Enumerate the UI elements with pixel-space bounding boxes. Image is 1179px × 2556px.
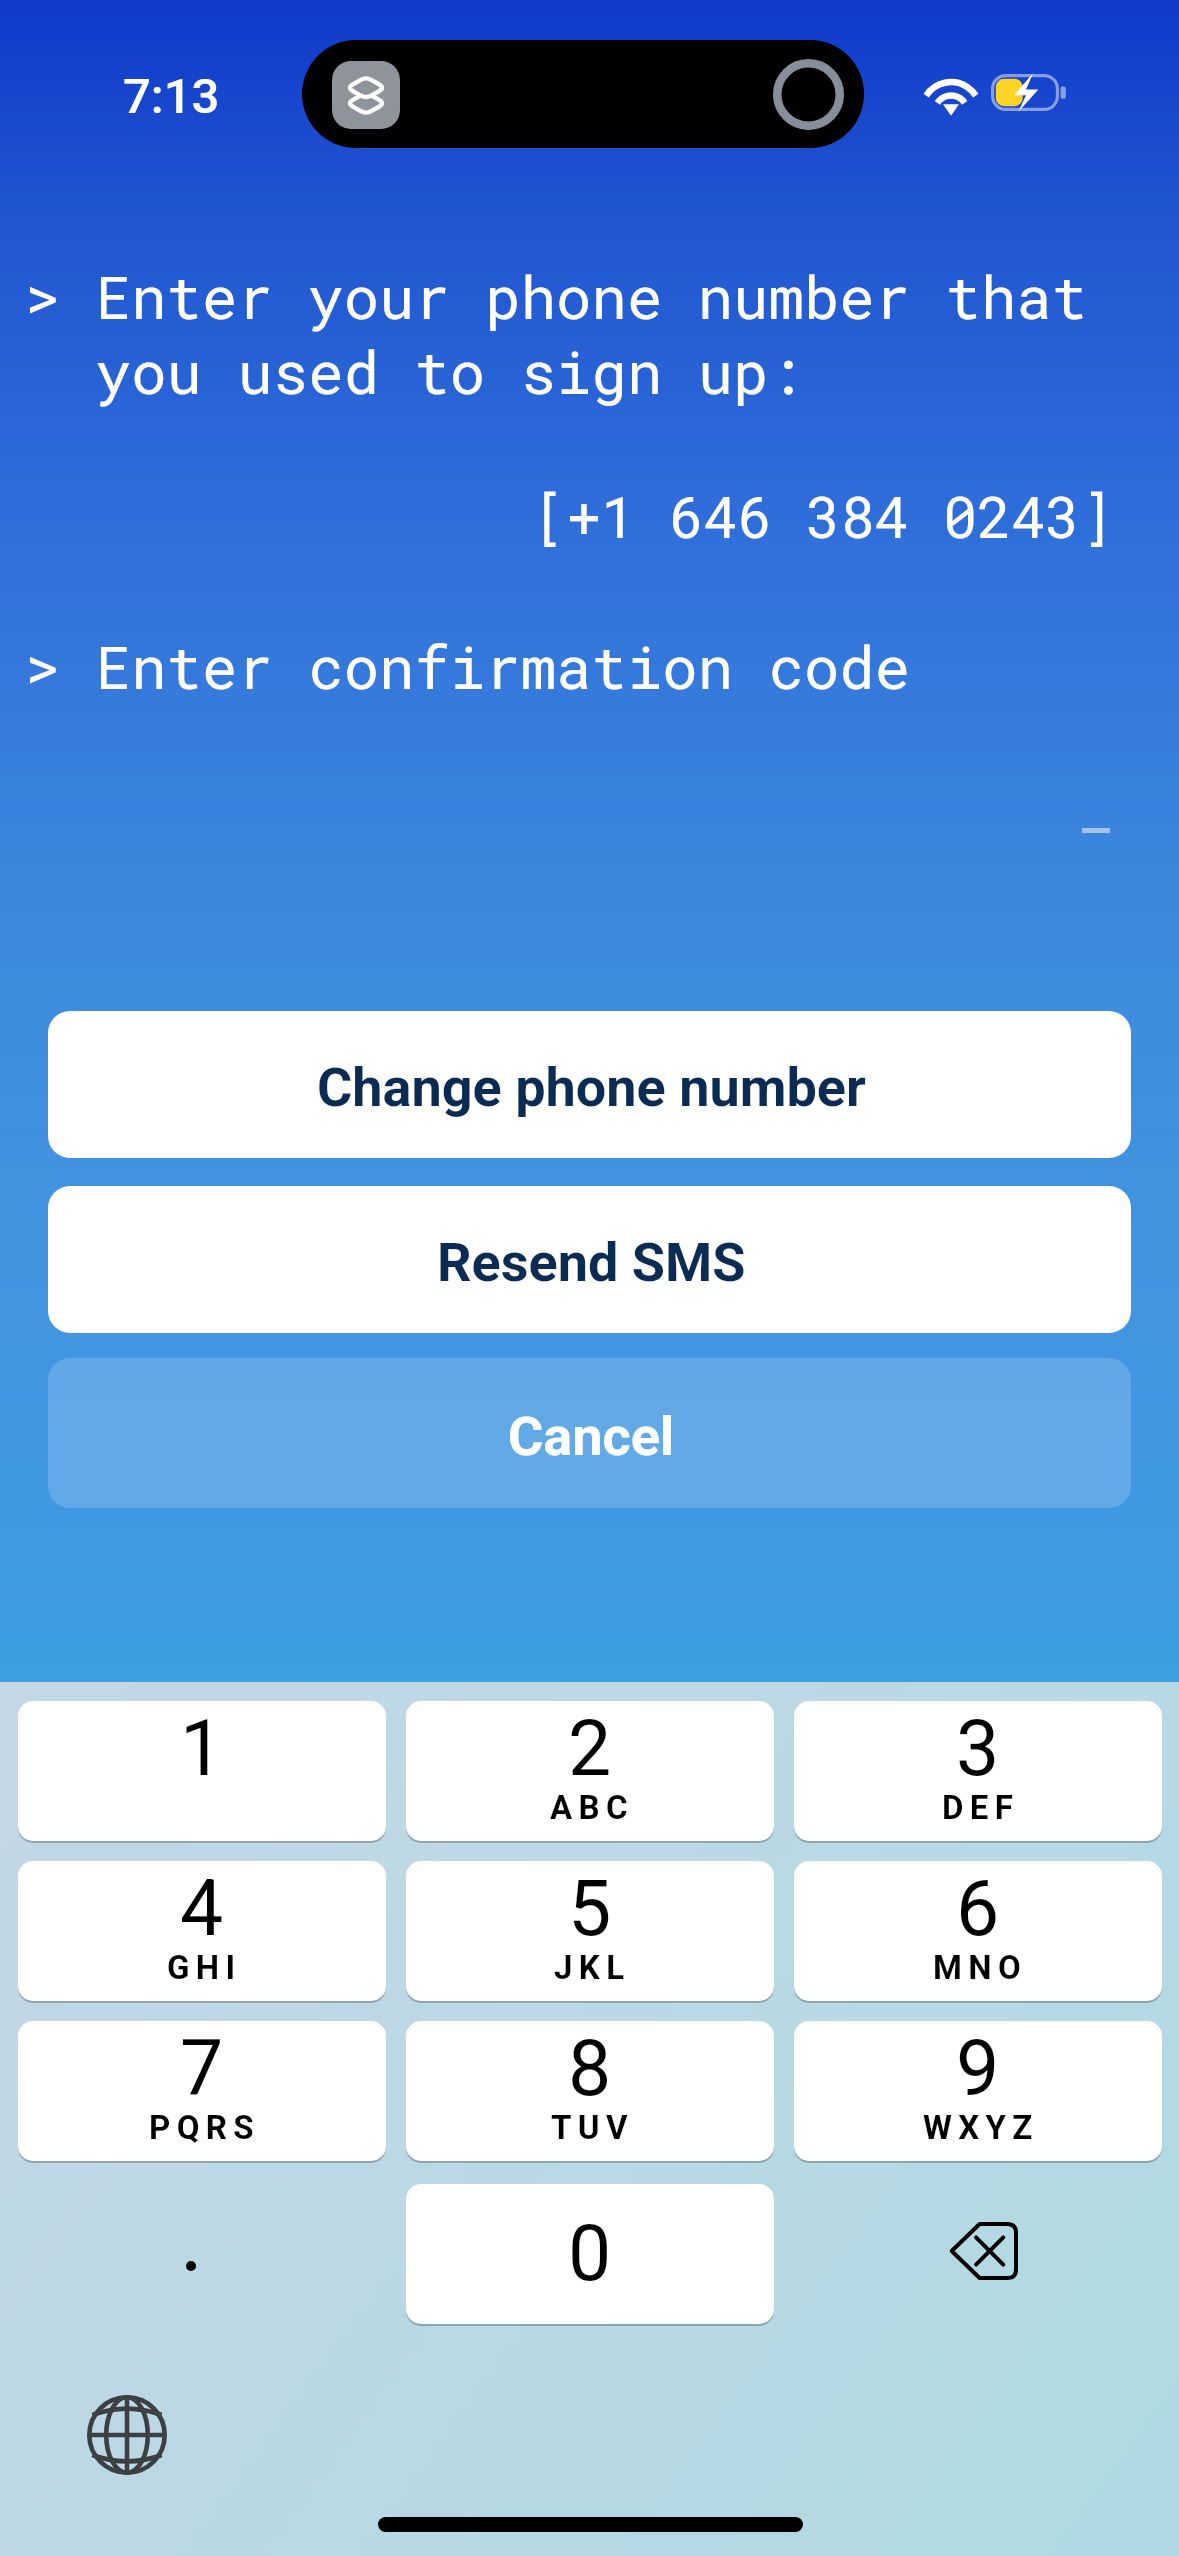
staticText: Cancel [508,1405,675,1468]
staticText: 3 [956,1704,1000,1794]
button[interactable]: Backspace [794,2184,1162,2324]
staticText: M N O [933,1948,1023,1987]
button[interactable]: 3 [794,1701,1162,1841]
staticText: > Enter confirmation code [25,627,911,705]
staticText: 7 [180,2024,224,2114]
staticText: G H I [167,1948,237,1987]
button[interactable]: Cancel [48,1358,1131,1508]
staticText: 9 [956,2024,1000,2114]
button[interactable]: 2 [406,1701,774,1841]
staticText: 4 [180,1864,224,1954]
button[interactable]: 4 [18,1861,386,2001]
staticText: 1 [180,1704,224,1794]
button[interactable]: 5 [406,1861,774,2001]
button[interactable]: Period [18,2184,386,2324]
staticText: Change phone number [317,1056,866,1119]
staticText: 5 [568,1864,612,1954]
button[interactable]: Change phone number [48,1011,1131,1158]
button[interactable]: 6 [794,1861,1162,2001]
staticText: 0 [568,2209,612,2299]
staticText: 7:13 [123,68,220,125]
staticText: J K L [554,1948,626,1987]
staticText: 2 [568,1704,612,1794]
staticText: P Q R S [149,2108,256,2147]
staticText: W X Y Z [923,2108,1034,2147]
staticText: 8 [568,2024,612,2114]
button[interactable]: 1 [18,1701,386,1841]
staticText: Resend SMS [437,1231,746,1294]
button[interactable]: 7 [18,2021,386,2161]
button[interactable]: Change keyboard language [71,2379,183,2491]
button[interactable]: 0 [406,2184,774,2324]
staticText: [+1 646 384 0243] [0,478,1114,553]
staticText: A B C [550,1788,630,1827]
button[interactable]: Resend SMS [48,1186,1131,1333]
staticText: D E F [942,1788,1015,1827]
staticText: 6 [956,1864,1000,1954]
button[interactable]: 8 [406,2021,774,2161]
button[interactable]: 9 [794,2021,1162,2161]
staticText: T U V [551,2108,629,2147]
staticText: > Enter your phone number that you used … [25,257,1088,410]
